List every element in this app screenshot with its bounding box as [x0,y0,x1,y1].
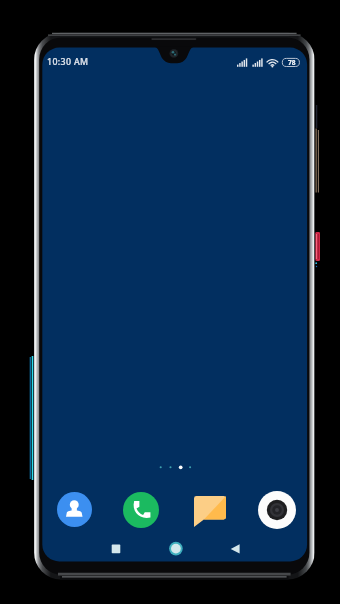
button[interactable]: Messages [194,496,226,527]
button[interactable]: Contacts [57,492,92,527]
button[interactable]: Camera [258,491,296,529]
button[interactable]: Phone [123,492,159,528]
staticText: 10:30 AM [47,56,89,68]
button[interactable]: Home [163,538,189,560]
button[interactable]: Recents [103,538,129,560]
staticText: 78 [288,58,296,67]
button[interactable]: Back [223,538,249,560]
